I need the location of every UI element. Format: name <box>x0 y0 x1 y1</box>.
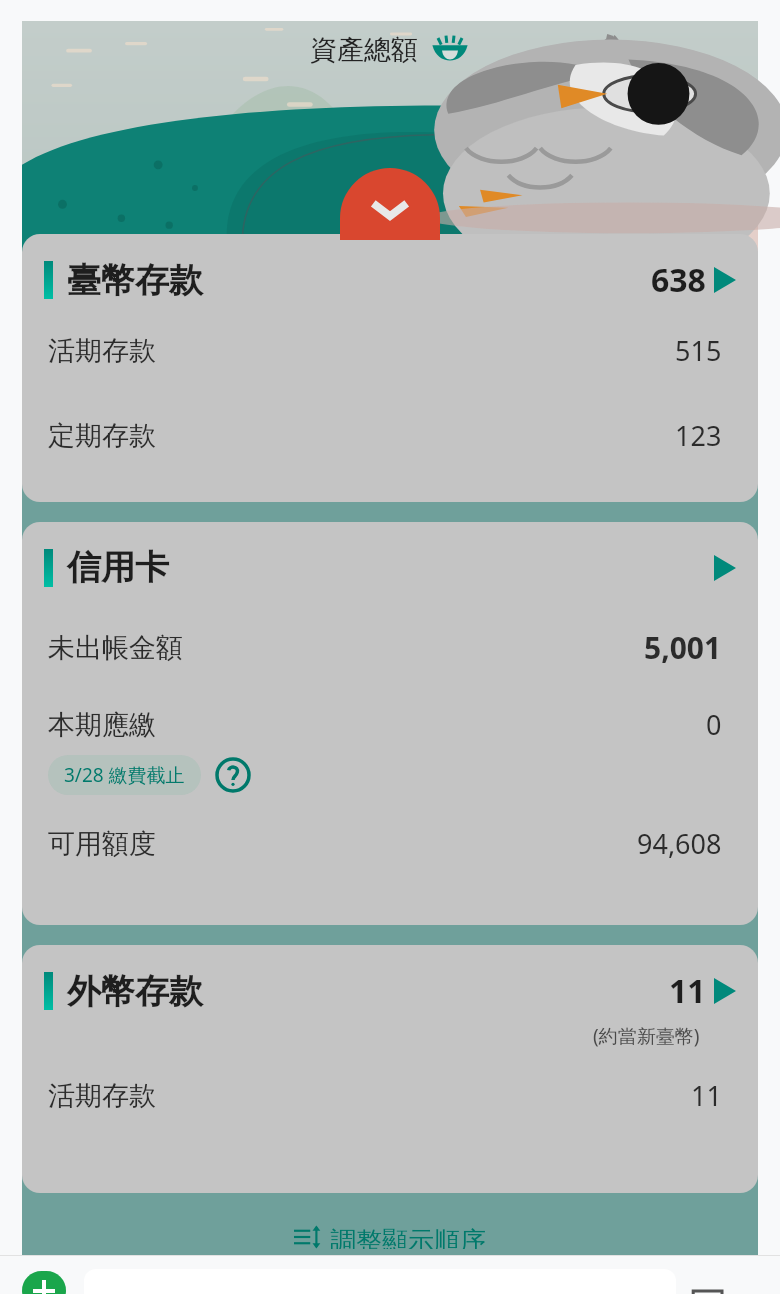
button[interactable]: 回覆 <box>690 1282 770 1294</box>
button[interactable]: 信用卡 <box>22 522 758 925</box>
button[interactable]: 資產總額 <box>310 33 470 67</box>
staticText: 未出帳金額 <box>48 631 183 665</box>
staticText: 臺幣存款 <box>67 259 203 302</box>
button[interactable]: 收合 <box>340 168 440 240</box>
staticText: 定期存款 <box>48 419 156 453</box>
staticText: 可用額度 <box>48 827 156 861</box>
staticText: 3/28 繳費截止 <box>64 762 185 788</box>
button[interactable]: 臺幣存款 <box>22 234 758 502</box>
staticText: 本期應繳 <box>48 708 156 742</box>
staticText: 信用卡 <box>67 546 169 589</box>
staticText: 11 <box>691 1077 722 1114</box>
button[interactable]: 3/28 繳費截止 <box>48 755 201 795</box>
staticText: 活期存款 <box>48 1079 156 1113</box>
staticText: 外幣存款 <box>67 970 203 1013</box>
staticText: 資產總額 <box>310 33 418 67</box>
staticText: 94,608 <box>637 825 722 862</box>
staticText: (約當新臺幣) <box>593 1023 700 1049</box>
staticText: 638 <box>651 258 706 302</box>
button[interactable]: 新增 <box>22 1271 66 1294</box>
staticText: 活期存款 <box>48 334 156 368</box>
button[interactable]: 外幣存款 <box>22 945 758 1193</box>
staticText: 123 <box>675 417 722 454</box>
staticText: 5,001 <box>644 627 722 668</box>
staticText: 515 <box>675 332 722 369</box>
staticText: 11 <box>669 969 706 1013</box>
staticText: 0 <box>706 706 722 743</box>
button[interactable]: 說明 <box>215 757 251 793</box>
button[interactable]: 調整顯示順序 <box>22 1219 758 1255</box>
staticText: 調整顯示順序 <box>330 1225 486 1249</box>
